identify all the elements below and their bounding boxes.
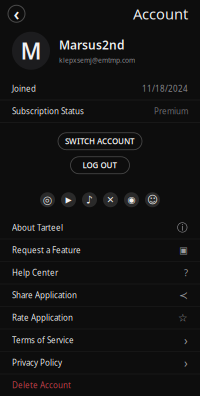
staticText: ☺ <box>147 194 158 206</box>
button[interactable]: Share Application <box>0 284 200 307</box>
button[interactable]: Request a Feature <box>0 239 200 262</box>
staticText: Share Application <box>12 290 77 300</box>
staticText: › <box>184 355 188 371</box>
staticText: Joined <box>12 83 36 94</box>
staticText: Request a Feature <box>12 245 81 255</box>
button[interactable]: YouTube <box>61 192 76 207</box>
staticText: 11/18/2024 <box>142 83 188 94</box>
staticText: Rate Application <box>12 312 73 323</box>
staticText: ≺ <box>179 289 188 301</box>
staticText: M <box>20 36 41 66</box>
button[interactable]: GitHub <box>145 192 160 207</box>
button[interactable]: Terms of Service <box>0 329 200 352</box>
staticText: SWITCH ACCOUNT <box>65 136 135 146</box>
button[interactable]: X <box>103 192 118 207</box>
staticText: ✕ <box>106 194 114 205</box>
button[interactable]: Back <box>0 1 31 26</box>
button[interactable]: TikTok <box>82 192 97 207</box>
staticText: ▣ <box>179 245 188 256</box>
staticText: › <box>184 332 188 348</box>
button[interactable]: About Tarteel <box>0 217 200 239</box>
staticText: About Tarteel <box>12 222 63 233</box>
staticText: ▶ <box>65 195 71 204</box>
button[interactable]: Help Center <box>0 262 200 284</box>
button[interactable]: Delete Account <box>0 374 200 396</box>
button[interactable]: SWITCH ACCOUNT <box>58 133 142 150</box>
staticText: Terms of Service <box>12 335 74 345</box>
button[interactable]: Rate Application <box>0 307 200 329</box>
staticText: Privacy Policy <box>12 357 62 368</box>
staticText: LOG OUT <box>82 160 117 170</box>
staticText: ⓘ <box>177 221 188 234</box>
staticText: Marsus2nd <box>59 37 125 53</box>
button[interactable]: LOG OUT <box>70 157 129 174</box>
staticText: Subscription Status <box>12 106 84 116</box>
staticText: klepxsemj@emtmp.com <box>59 56 135 65</box>
staticText: ◉ <box>127 194 135 205</box>
staticText: Premium <box>154 106 188 116</box>
staticText: Help Center <box>12 267 58 278</box>
staticText: ‹ <box>13 2 19 25</box>
button[interactable]: Instagram <box>40 192 55 207</box>
staticText: ☆ <box>178 312 188 324</box>
staticText: ? <box>184 267 188 279</box>
staticText: ◎ <box>43 194 52 206</box>
button[interactable]: Discord <box>124 192 139 207</box>
staticText: Delete Account <box>12 380 71 390</box>
button[interactable]: Privacy Policy <box>0 352 200 374</box>
staticText: Account <box>133 4 188 23</box>
staticText: ♪ <box>86 194 93 206</box>
